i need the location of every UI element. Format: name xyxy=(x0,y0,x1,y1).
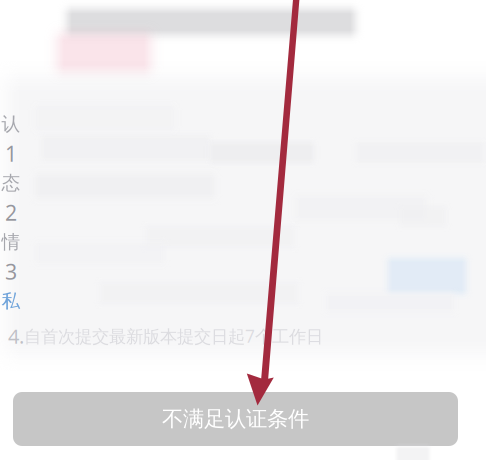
staticText: 3 xyxy=(5,257,17,286)
staticText: 4. xyxy=(8,323,24,349)
staticText: 态 xyxy=(1,171,20,194)
staticText: 认 xyxy=(1,112,20,135)
staticText: 自首次提交最新版本提交日起7个工作日 xyxy=(24,324,323,347)
staticText: 情 xyxy=(1,230,20,253)
staticText: 私 xyxy=(1,289,20,312)
staticText: 1 xyxy=(5,139,17,168)
staticText: 2 xyxy=(5,198,17,227)
staticText: 不满足认证条件 xyxy=(162,406,309,432)
button[interactable]: 不满足认证条件 xyxy=(13,392,458,446)
